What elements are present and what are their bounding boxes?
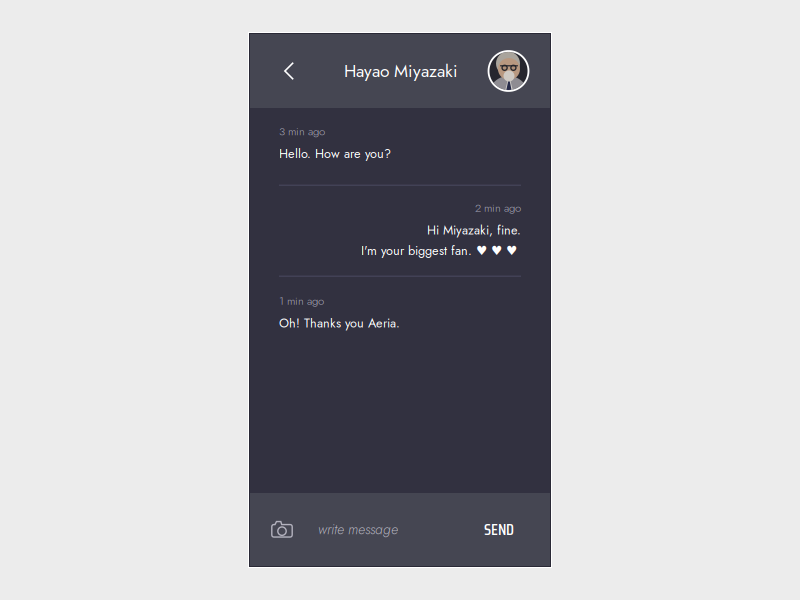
button[interactable]: SEND <box>478 505 520 554</box>
staticText: SEND <box>484 517 514 542</box>
staticText: write message <box>318 519 398 540</box>
staticText: 1 min ago <box>279 293 324 309</box>
button[interactable]: Attach a photo <box>265 512 299 546</box>
staticText: Hi Miyazaki, fine. <box>427 221 521 239</box>
staticText: 3 min ago <box>279 123 325 139</box>
staticText: 2 min ago <box>475 200 521 216</box>
staticText: Oh! Thanks you Aeria. <box>279 314 400 332</box>
staticText: Hello. How are you? <box>279 144 391 163</box>
button[interactable]: Back <box>270 49 308 93</box>
button[interactable]: Hayao Miyazaki profile <box>488 50 529 91</box>
staticText: I'm your biggest fan. ♥ ♥ ♥ <box>361 241 521 260</box>
staticText: Hayao Miyazaki <box>344 58 458 83</box>
button[interactable]: write message <box>299 507 438 552</box>
